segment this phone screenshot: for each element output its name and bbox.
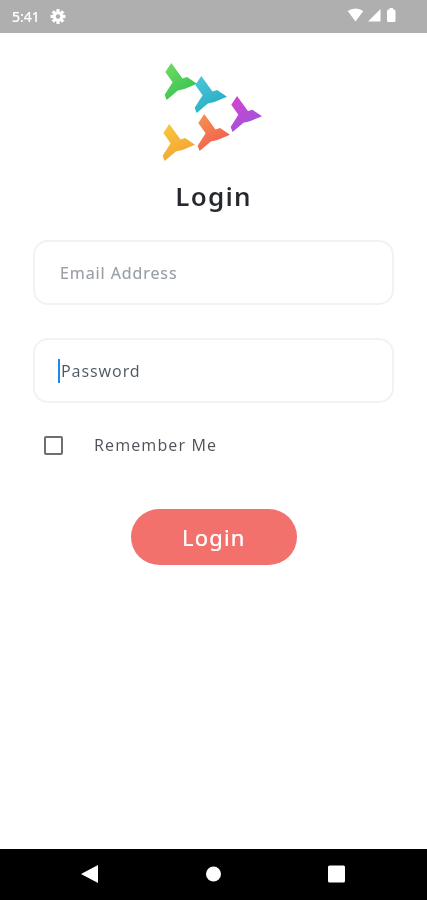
button[interactable]: Password	[33, 338, 394, 403]
button[interactable]	[285, 849, 427, 900]
button[interactable]: Remember Me	[44, 434, 218, 456]
staticText: Password	[61, 360, 141, 382]
button[interactable]	[143, 849, 285, 900]
staticText: Login	[0, 178, 427, 213]
button[interactable]	[0, 849, 143, 900]
staticText: Remember Me	[94, 434, 218, 456]
staticText: Email Address	[60, 262, 178, 284]
button[interactable]: Login	[131, 509, 297, 565]
button[interactable]: Email Address	[33, 240, 394, 305]
staticText: 5:41	[12, 7, 40, 26]
staticText: Login	[182, 522, 246, 552]
